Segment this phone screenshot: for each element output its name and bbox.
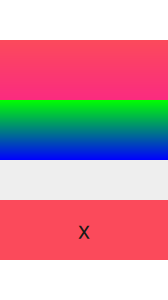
staticText: x <box>78 215 90 245</box>
